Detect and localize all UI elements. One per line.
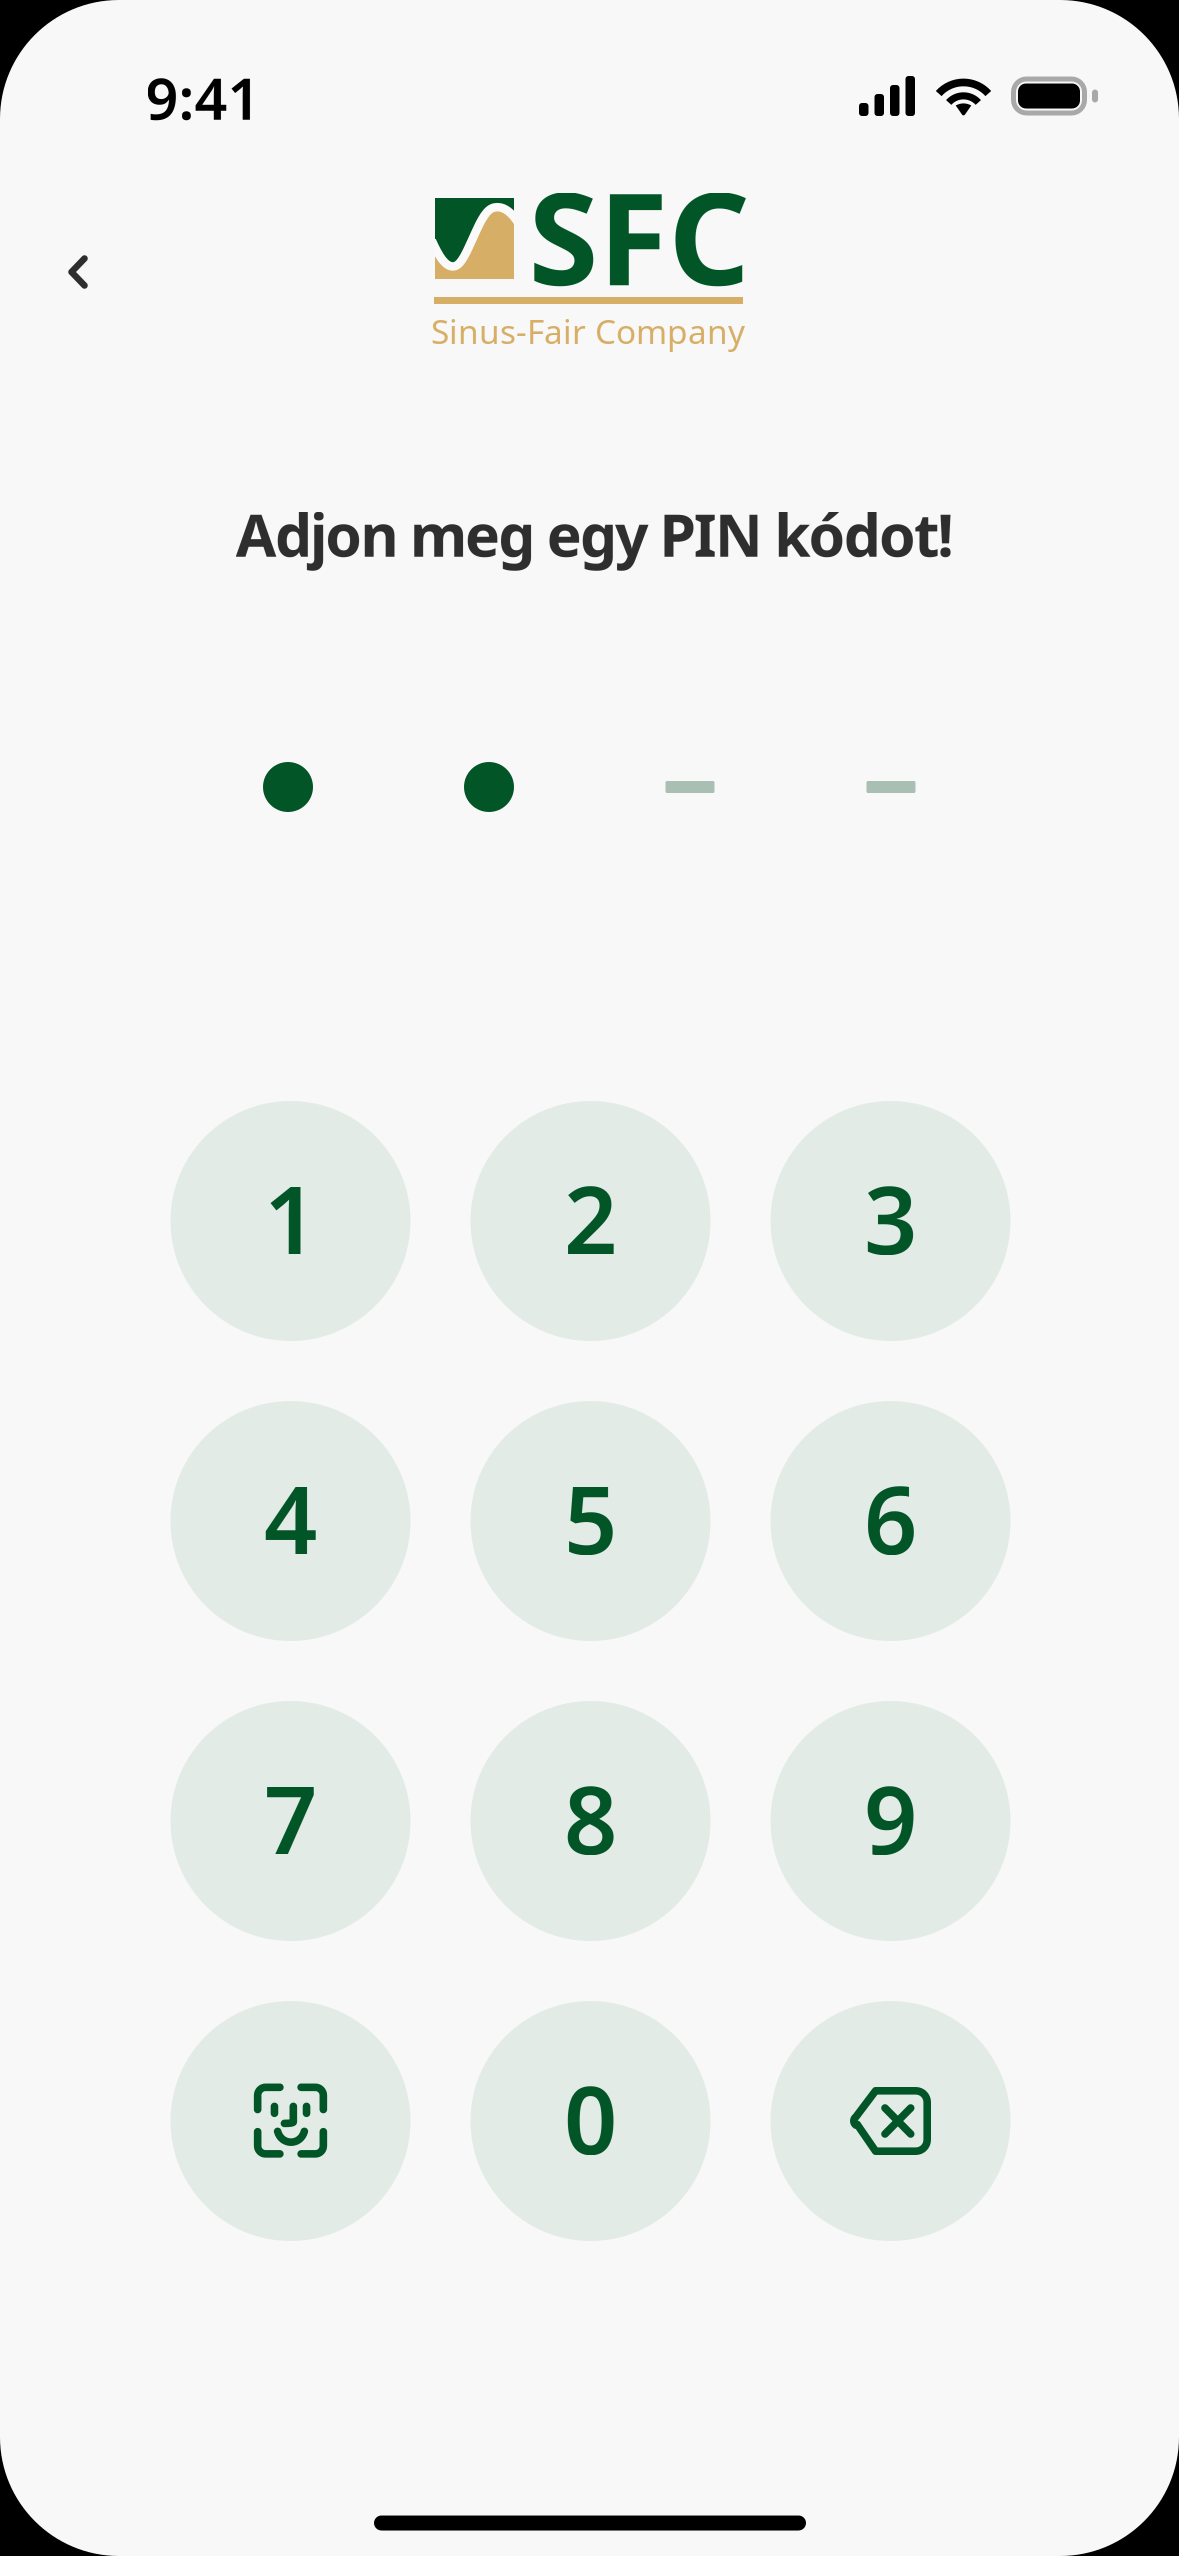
button[interactable]: Back	[23, 217, 133, 327]
button[interactable]: 0	[470, 2001, 710, 2241]
staticText: 8	[564, 1756, 617, 1880]
staticText: 9:41	[145, 59, 260, 135]
staticText: 1	[264, 1156, 317, 1280]
staticText: 4	[264, 1456, 317, 1580]
staticText: 6	[864, 1456, 917, 1580]
button[interactable]: 3	[770, 1101, 1010, 1341]
staticText: 3	[864, 1156, 917, 1280]
button[interactable]: 7	[170, 1701, 410, 1941]
button[interactable]: 2	[470, 1101, 710, 1341]
staticText: Sinus-Fair Company	[431, 309, 745, 353]
button[interactable]: Delete	[770, 2001, 1010, 2241]
button[interactable]: 4	[170, 1401, 410, 1641]
staticText: 7	[264, 1756, 317, 1880]
button[interactable]: Face ID	[170, 2001, 410, 2241]
staticText: 0	[564, 2056, 617, 2180]
button[interactable]: 1	[170, 1101, 410, 1341]
button[interactable]: 9	[770, 1701, 1010, 1941]
staticText: 5	[564, 1456, 617, 1580]
staticText: 2	[564, 1156, 617, 1280]
button[interactable]: 5	[470, 1401, 710, 1641]
staticText: 9	[864, 1756, 917, 1880]
button[interactable]: 8	[470, 1701, 710, 1941]
staticText: SFC	[528, 152, 749, 320]
staticText: Adjon meg egy PIN kódot!	[236, 495, 954, 573]
button[interactable]: 6	[770, 1401, 1010, 1641]
